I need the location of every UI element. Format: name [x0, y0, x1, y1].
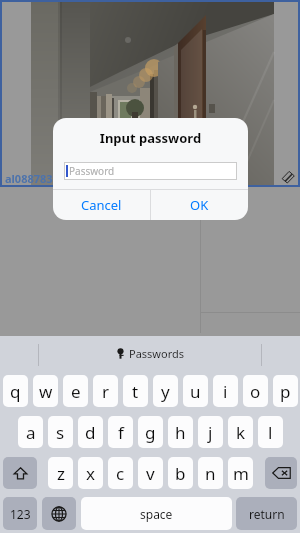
button[interactable]: n [198, 457, 223, 489]
button[interactable]: l [258, 416, 283, 448]
button[interactable]: space [81, 497, 232, 530]
staticText: return [249, 506, 285, 522]
button[interactable]: r [93, 375, 118, 407]
staticText: r [102, 380, 110, 403]
staticText: w [39, 380, 53, 403]
button[interactable]: d [78, 416, 103, 448]
staticText: f [118, 421, 124, 444]
staticText: space [140, 506, 173, 522]
staticText: Input password [53, 129, 248, 147]
staticText: v [146, 462, 155, 485]
staticText: q [10, 380, 21, 403]
staticText: u [190, 380, 201, 403]
button[interactable]: e [63, 375, 88, 407]
staticText: n [205, 462, 216, 485]
button[interactable]: p [273, 375, 298, 407]
button[interactable]: x [78, 457, 103, 489]
button[interactable]: Passwords [116, 346, 185, 361]
staticText: i [223, 380, 228, 403]
button[interactable]: k [228, 416, 253, 448]
button[interactable]: y [153, 375, 178, 407]
button[interactable]: h [168, 416, 193, 448]
button[interactable]: m [228, 457, 253, 489]
staticText: y [161, 380, 170, 403]
button[interactable]: Password [64, 162, 237, 180]
staticText: l [268, 421, 273, 444]
button[interactable]: c [108, 457, 133, 489]
staticText: m [233, 462, 249, 485]
staticText: Cancel [81, 196, 122, 214]
button[interactable]: a [18, 416, 43, 448]
button[interactable]: z [48, 457, 73, 489]
staticText: 123 [10, 506, 31, 522]
staticText: d [85, 421, 96, 444]
button[interactable]: q [3, 375, 28, 407]
button[interactable]: s [48, 416, 73, 448]
button[interactable]: b [168, 457, 193, 489]
button[interactable]: v [138, 457, 163, 489]
button[interactable]: return [236, 497, 297, 530]
staticText: x [86, 462, 95, 485]
button[interactable]: 123 [3, 497, 37, 530]
staticText: Password [69, 164, 115, 178]
button[interactable]: t [123, 375, 148, 407]
button[interactable]: j [198, 416, 223, 448]
staticText: o [250, 380, 261, 403]
button[interactable]: f [108, 416, 133, 448]
staticText: z [57, 462, 65, 485]
button[interactable]: w [33, 375, 58, 407]
staticText: Passwords [129, 346, 185, 361]
staticText: p [280, 380, 291, 403]
button[interactable]: u [183, 375, 208, 407]
button[interactable]: Backspace [265, 457, 297, 489]
staticText: a [26, 421, 36, 444]
button[interactable]: g [138, 416, 163, 448]
button[interactable]: o [243, 375, 268, 407]
staticText: j [208, 421, 213, 444]
staticText: b [175, 462, 186, 485]
staticText: t [132, 380, 139, 403]
button[interactable]: Emoji and languages [42, 497, 76, 530]
staticText: al088783ef [5, 171, 64, 186]
staticText: k [236, 421, 246, 444]
staticText: h [175, 421, 186, 444]
button[interactable]: Cancel [53, 190, 150, 220]
staticText: s [56, 421, 65, 444]
button[interactable]: Shift [3, 457, 37, 489]
button[interactable]: OK [151, 190, 248, 220]
staticText: OK [190, 196, 209, 214]
staticText: e [71, 380, 81, 403]
button[interactable]: i [213, 375, 238, 407]
staticText: c [116, 462, 125, 485]
staticText: g [145, 421, 156, 444]
